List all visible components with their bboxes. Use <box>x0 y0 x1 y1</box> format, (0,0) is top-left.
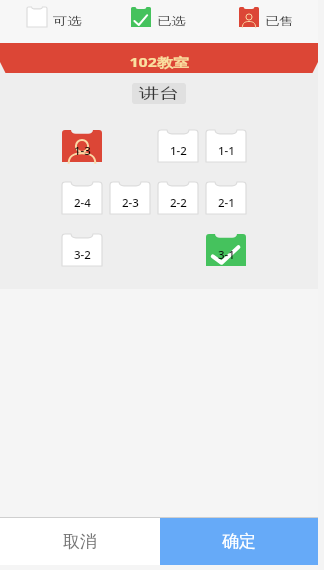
button[interactable]: 可选 <box>27 7 75 27</box>
button[interactable]: 2-2 <box>158 182 198 214</box>
staticText: 已售 <box>265 14 294 28</box>
staticText: 1-2 <box>170 144 187 158</box>
button[interactable]: 1-1 <box>206 130 246 162</box>
button[interactable]: 确定 <box>160 518 318 565</box>
button[interactable]: 3-1 <box>206 234 246 266</box>
button[interactable]: 3-2 <box>62 234 102 266</box>
staticText: 2-1 <box>218 196 235 210</box>
staticText: 确定 <box>222 531 256 552</box>
button[interactable]: 2-1 <box>206 182 246 214</box>
staticText: 讲台 <box>139 85 179 103</box>
button[interactable]: 1-3 <box>62 130 102 162</box>
staticText: 102教室 <box>129 54 190 71</box>
staticText: 3-2 <box>74 248 91 262</box>
button[interactable]: 2-4 <box>62 182 102 214</box>
staticText: 已选 <box>157 14 186 28</box>
button[interactable]: 讲台 <box>132 83 186 104</box>
staticText: 3-1 <box>218 248 235 262</box>
staticText: 可选 <box>53 14 82 28</box>
button[interactable]: 1-2 <box>158 130 198 162</box>
button[interactable]: 已售 <box>239 7 287 27</box>
staticText: 取消 <box>63 531 97 552</box>
staticText: 2-3 <box>122 196 139 210</box>
button[interactable]: 已选 <box>131 7 179 27</box>
staticText: 2-4 <box>74 196 91 210</box>
staticText: 1-1 <box>218 144 235 158</box>
button[interactable]: 2-3 <box>110 182 150 214</box>
button[interactable]: 取消 <box>0 518 160 565</box>
staticText: 2-2 <box>170 196 187 210</box>
staticText: 1-3 <box>74 144 91 158</box>
